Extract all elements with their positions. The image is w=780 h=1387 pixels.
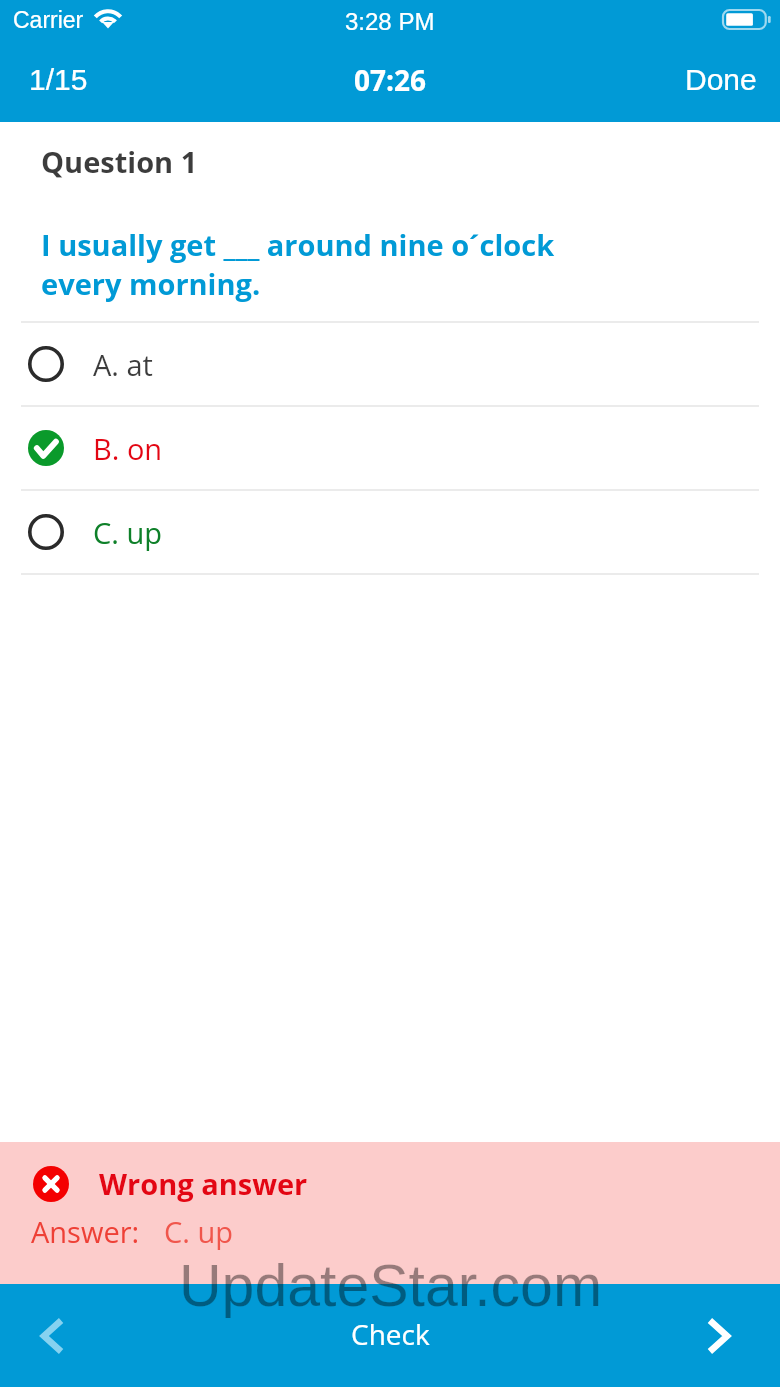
button[interactable]: Next question [680,1286,780,1386]
staticText: Check [351,1315,430,1353]
button[interactable]: B. on [0,407,780,489]
staticText: Answer: [31,1212,140,1251]
button[interactable]: A. at [0,323,780,405]
staticText: Done [685,63,757,97]
staticText: Wrong answer [99,1164,308,1203]
button[interactable]: C. up [0,491,780,573]
staticText: 1/15 [29,63,88,97]
staticText: A. at [93,345,153,384]
button[interactable]: Check [291,1293,490,1375]
staticText: 3:28 PM [345,8,435,35]
staticText: Question 1 [41,142,198,181]
staticText: B. on [93,429,163,468]
staticText: C. up [93,513,162,552]
button[interactable]: Done [661,49,780,111]
staticText: I usually get ___ around nine o´clock ev… [41,225,590,303]
staticText: UpdateStar.com [179,1253,603,1319]
staticText: 07:26 [354,61,427,99]
button[interactable]: Previous question [0,1286,100,1386]
staticText: Carrier [13,7,84,33]
staticText: C. up [164,1212,233,1251]
